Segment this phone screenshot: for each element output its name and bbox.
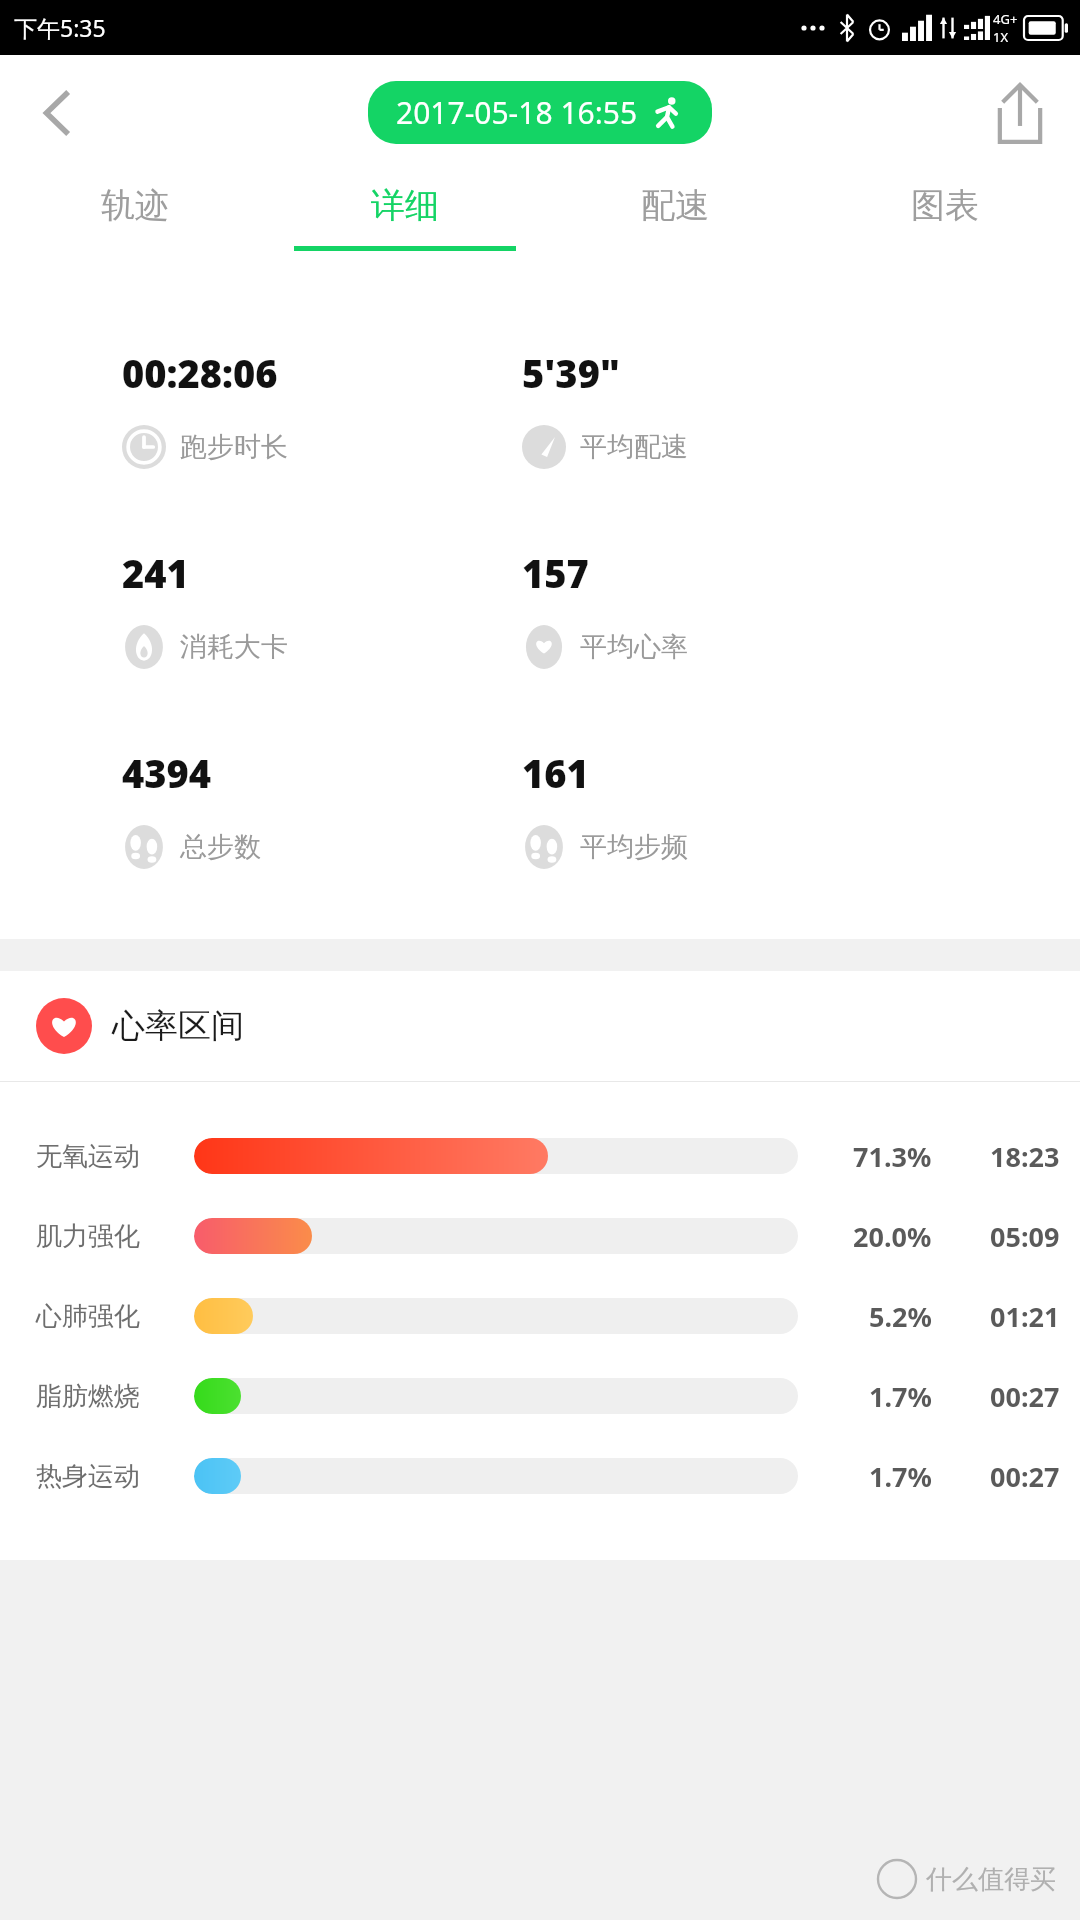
button[interactable]: Back [24, 79, 92, 147]
staticText: 热身运动 [36, 1460, 186, 1493]
staticText: 什么值得买 [926, 1863, 1056, 1896]
button[interactable]: 配速 [540, 170, 810, 285]
staticText: 平均步频 [580, 830, 688, 864]
staticText: 心率区间 [112, 1005, 244, 1047]
staticText: 1.7% [869, 1458, 932, 1495]
staticText: 配速 [641, 184, 709, 227]
staticText: 肌力强化 [36, 1220, 186, 1253]
staticText: 00:28:06 [122, 347, 278, 399]
staticText: 18:23 [990, 1138, 1060, 1175]
staticText: 4G+ [993, 10, 1018, 28]
button[interactable]: 脂肪燃烧 [0, 1356, 1080, 1436]
button[interactable]: 详细 [270, 170, 540, 285]
button[interactable]: 心率区间 [0, 971, 1080, 1081]
staticText: 4394 [122, 747, 212, 799]
staticText: 总步数 [180, 830, 261, 864]
staticText: 20.0% [853, 1218, 932, 1255]
button[interactable]: 2017-05-18 16:55 [368, 81, 712, 144]
button[interactable]: 心肺强化 [0, 1276, 1080, 1356]
button[interactable]: Share [984, 77, 1056, 149]
staticText: 平均配速 [580, 430, 688, 464]
button[interactable]: 轨迹 [0, 170, 270, 285]
staticText: 详细 [371, 184, 439, 227]
staticText: 1.7% [869, 1378, 932, 1415]
staticText: 5.2% [869, 1298, 932, 1335]
button[interactable]: 图表 [810, 170, 1080, 285]
staticText: 脂肪燃烧 [36, 1380, 186, 1413]
button[interactable]: 肌力强化 [0, 1196, 1080, 1276]
staticText: 01:21 [990, 1298, 1060, 1335]
staticText: 05:09 [990, 1218, 1060, 1255]
staticText: 241 [122, 547, 189, 599]
staticText: 5'39" [522, 347, 620, 399]
staticText: 157 [522, 547, 589, 599]
staticText: 无氧运动 [36, 1140, 186, 1173]
staticText: 2017-05-18 16:55 [396, 92, 638, 133]
staticText: 71.3% [853, 1138, 932, 1175]
staticText: 跑步时长 [180, 430, 288, 464]
staticText: 1X [993, 28, 1009, 46]
staticText: 心肺强化 [36, 1300, 186, 1333]
staticText: 00:27 [990, 1378, 1060, 1415]
staticText: 下午5:35 [14, 12, 106, 43]
staticText: 图表 [911, 184, 979, 227]
staticText: 消耗大卡 [180, 630, 288, 664]
button[interactable]: 热身运动 [0, 1436, 1080, 1516]
staticText: 161 [522, 747, 589, 799]
button[interactable]: 无氧运动 [0, 1116, 1080, 1196]
staticText: 平均心率 [580, 630, 688, 664]
staticText: 00:27 [990, 1458, 1060, 1495]
staticText: 轨迹 [101, 184, 169, 227]
